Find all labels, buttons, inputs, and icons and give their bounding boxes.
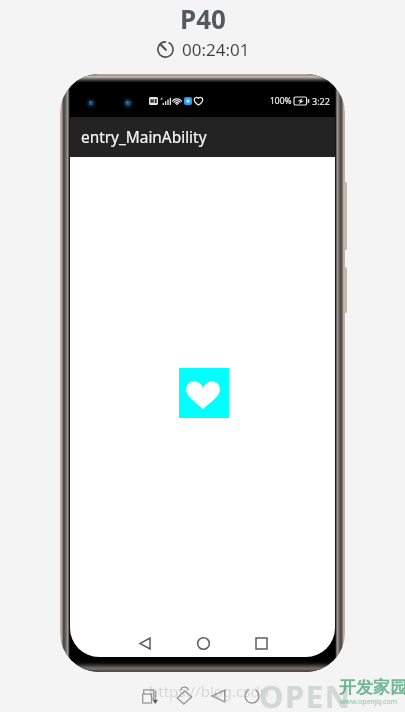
button[interactable]: Home	[183, 630, 223, 657]
staticText: 3:22	[312, 95, 330, 107]
button[interactable]: Back	[125, 630, 165, 657]
staticText: entry_MainAbility	[81, 127, 207, 148]
button[interactable]: Volume	[344, 182, 347, 250]
staticText: OPEN	[259, 675, 352, 712]
button[interactable]: Recents	[241, 630, 281, 657]
staticText: 00:24:01	[182, 38, 250, 61]
button[interactable]: Rotate	[171, 683, 197, 709]
button[interactable]: Refresh	[239, 683, 265, 709]
staticText: P40	[180, 1, 226, 36]
button[interactable]: Favorite	[179, 368, 229, 418]
staticText: 开发家园	[339, 677, 405, 698]
staticText: 100%	[270, 95, 292, 107]
button[interactable]: Power	[344, 267, 347, 313]
staticText: www.openjq.com	[340, 697, 398, 707]
button[interactable]: entry_MainAbility	[70, 117, 335, 157]
staticText: https://blog.csdn	[149, 681, 269, 701]
button[interactable]: Save screenshot	[137, 683, 163, 709]
button[interactable]: Back	[205, 683, 231, 709]
